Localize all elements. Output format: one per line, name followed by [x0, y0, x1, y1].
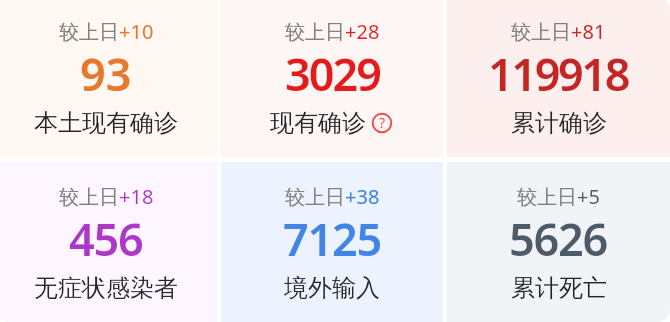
staticText: 较上日+10: [59, 18, 154, 45]
button[interactable]: 较上日+18: [0, 162, 217, 322]
staticText: 累计死亡: [511, 273, 607, 303]
staticText: 5626: [509, 208, 608, 269]
button[interactable]: 较上日+28: [221, 0, 443, 157]
button[interactable]: 现有确诊说明: [370, 111, 394, 135]
staticText: 境外输入: [284, 273, 380, 303]
staticText: 本土现有确诊: [34, 108, 178, 138]
staticText: 119918: [488, 43, 629, 104]
staticText: 累计确诊: [511, 108, 607, 138]
staticText: 3029: [285, 43, 380, 104]
staticText: 93: [80, 43, 132, 104]
staticText: 较上日+28: [285, 18, 380, 45]
staticText: 较上日+81: [511, 18, 606, 45]
staticText: 较上日+5: [517, 183, 600, 210]
staticText: 较上日+38: [285, 183, 380, 210]
staticText: 7125: [283, 208, 382, 269]
button[interactable]: 较上日+81: [447, 0, 670, 157]
button[interactable]: 较上日+5: [447, 162, 670, 322]
staticText: ?: [379, 113, 386, 132]
staticText: 现有确诊: [270, 108, 366, 138]
staticText: 无症状感染者: [34, 273, 178, 303]
button[interactable]: 较上日+38: [221, 162, 443, 322]
staticText: 456: [69, 208, 143, 269]
button[interactable]: 较上日+10: [0, 0, 217, 157]
staticText: 较上日+18: [59, 183, 154, 210]
